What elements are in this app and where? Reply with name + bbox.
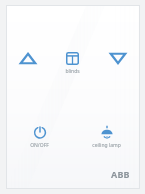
staticText: ABB (111, 168, 130, 180)
button[interactable]: Blinds up (6, 52, 50, 88)
staticText: ON/OFF (30, 142, 49, 149)
button[interactable]: blinds (50, 52, 95, 88)
staticText: blinds (65, 68, 80, 75)
button[interactable]: ceiling lamp (73, 125, 140, 159)
staticText: ceiling lamp (92, 142, 121, 149)
button[interactable]: ON/OFF (6, 125, 73, 159)
button[interactable]: Blinds down (95, 52, 140, 88)
